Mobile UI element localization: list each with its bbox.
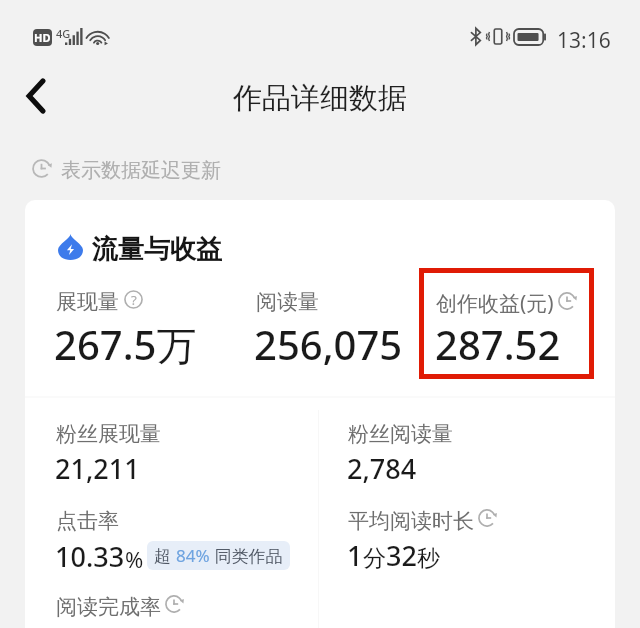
staticText: 粉丝展现量 (56, 421, 161, 447)
staticText: ? (131, 291, 137, 309)
staticText: 表示数据延迟更新 (61, 158, 221, 183)
staticText: 展现量 (56, 289, 119, 315)
staticText: 2,784 (347, 450, 417, 487)
staticText: 超 (154, 544, 176, 567)
staticText: 流量与收益 (92, 233, 222, 266)
staticText: 同类作品 (210, 544, 283, 567)
staticText: 阅读量 (256, 289, 319, 315)
staticText: 创作收益(元) (436, 289, 554, 318)
staticText: 作品详细数据 (0, 80, 640, 117)
staticText: HD (34, 30, 51, 45)
staticText: 267.5万 (54, 317, 197, 372)
button[interactable]: Back (7, 67, 65, 125)
staticText: % (125, 544, 144, 574)
staticText: 阅读完成率 (56, 594, 161, 620)
staticText: 平均阅读时长 (348, 508, 474, 534)
staticText: 点击率 (56, 508, 119, 534)
staticText: 13:16 (557, 26, 611, 55)
staticText: 21,211 (55, 450, 140, 487)
staticText: 84% (176, 544, 210, 567)
staticText: 粉丝阅读量 (348, 421, 453, 447)
staticText: 256,075 (254, 317, 403, 371)
staticText: 分 (363, 544, 386, 573)
staticText: 4G (56, 26, 71, 41)
staticText: 1 (347, 537, 363, 574)
staticText: 秒 (417, 544, 440, 573)
staticText: 10.33 (55, 538, 125, 575)
staticText: 32 (386, 537, 417, 574)
staticText: 287.52 (435, 317, 561, 371)
